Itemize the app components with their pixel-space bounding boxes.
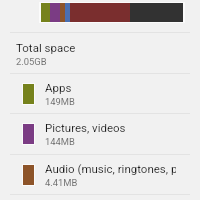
button[interactable]: Total space bbox=[0, 33, 200, 73]
staticText: Total space bbox=[16, 41, 76, 54]
staticText: Pictures, videos bbox=[45, 121, 126, 134]
staticText: 2.05GB bbox=[16, 56, 47, 67]
button[interactable]: Apps bbox=[0, 73, 200, 113]
staticText: Apps bbox=[45, 81, 72, 94]
staticText: 149MB bbox=[45, 96, 75, 107]
button[interactable]: Audio (music, ringtones, podcasts, etc.) bbox=[0, 154, 200, 194]
button[interactable]: Pictures, videos bbox=[0, 113, 200, 153]
staticText: 144MB bbox=[45, 136, 75, 147]
staticText: Audio (music, ringtones, podcasts, etc.) bbox=[45, 162, 176, 175]
staticText: 4.41MB bbox=[45, 177, 78, 188]
